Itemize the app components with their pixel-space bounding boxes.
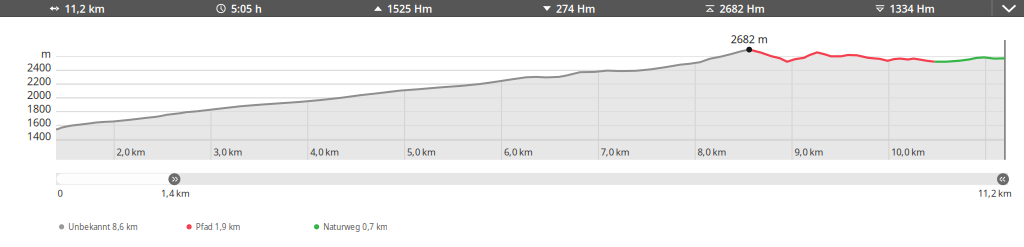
staticText: 5,0 km <box>407 146 436 158</box>
button[interactable]: 5:05 h <box>216 0 262 17</box>
staticText: 11,2 km <box>64 1 104 16</box>
staticText: 1,4 km <box>161 187 190 199</box>
staticText: 1800 <box>27 101 51 116</box>
staticText: 1525 Hm <box>387 1 432 16</box>
button[interactable]: Range start handle <box>168 173 180 185</box>
staticText: 2400 <box>27 60 51 74</box>
button[interactable]: 11,2 km <box>49 0 104 17</box>
staticText: 0 <box>57 187 62 199</box>
staticText: 2682 Hm <box>719 1 764 16</box>
staticText: Unbekannt 8,6 km <box>68 221 137 232</box>
staticText: 2,0 km <box>117 146 146 158</box>
button[interactable]: 274 Hm <box>543 0 595 17</box>
staticText: Naturweg 0,7 km <box>323 221 387 232</box>
staticText: 5:05 h <box>231 1 262 16</box>
staticText: 1600 <box>27 115 51 129</box>
staticText: 11,2 km <box>978 187 1012 199</box>
staticText: 2000 <box>27 88 51 102</box>
button[interactable]: 1525 Hm <box>374 0 432 17</box>
staticText: 6,0 km <box>504 146 533 158</box>
staticText: 9,0 km <box>794 146 823 158</box>
button[interactable]: Collapse details <box>993 0 1024 17</box>
button[interactable]: Range end handle <box>997 173 1009 185</box>
staticText: 4,0 km <box>310 146 339 158</box>
staticText: 2200 <box>27 74 51 88</box>
staticText: 2682 m <box>731 32 768 46</box>
staticText: 10,0 km <box>891 146 925 158</box>
staticText: 8,0 km <box>698 146 727 158</box>
button[interactable]: 2682 Hm <box>705 0 764 17</box>
button[interactable]: 1334 Hm <box>875 0 934 17</box>
staticText: 274 Hm <box>556 1 595 16</box>
staticText: 1400 <box>27 129 51 143</box>
staticText: 3,0 km <box>213 146 242 158</box>
staticText: 1334 Hm <box>889 1 934 16</box>
staticText: Pfad 1,9 km <box>196 221 240 232</box>
staticText: m <box>41 46 51 61</box>
staticText: 7,0 km <box>601 146 630 158</box>
